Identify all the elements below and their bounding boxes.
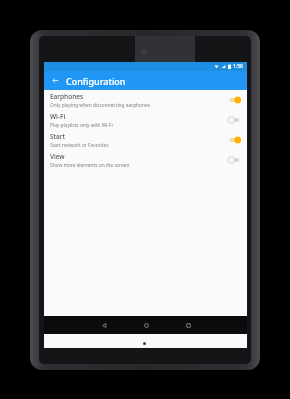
button[interactable]: Home [135, 316, 157, 334]
button[interactable]: Start [44, 130, 247, 150]
staticText: 1:56 [233, 63, 243, 70]
button[interactable]: On [227, 134, 241, 146]
button[interactable]: Recent apps [177, 316, 199, 334]
button[interactable]: On [227, 94, 241, 106]
staticText: Configuration [66, 75, 126, 87]
staticText: Wi-Fi [50, 112, 66, 121]
staticText: Show more elements on the screen [50, 162, 130, 169]
staticText: Earphones [50, 92, 84, 101]
staticText: View [50, 152, 65, 161]
staticText: Play playlists only with Wi-Fi [50, 122, 113, 129]
button[interactable]: Navigate up [49, 74, 62, 87]
button[interactable]: Off [227, 154, 241, 166]
button[interactable]: Wi-Fi [44, 110, 247, 130]
staticText: Only playing when disconnecting earphone… [50, 102, 150, 109]
button[interactable]: Off [227, 114, 241, 126]
button[interactable]: Back [93, 316, 115, 334]
button[interactable]: Earphones [44, 90, 247, 110]
button[interactable]: View [44, 150, 247, 170]
staticText: Start [50, 132, 66, 141]
staticText: Start network or Favorites [50, 142, 109, 149]
